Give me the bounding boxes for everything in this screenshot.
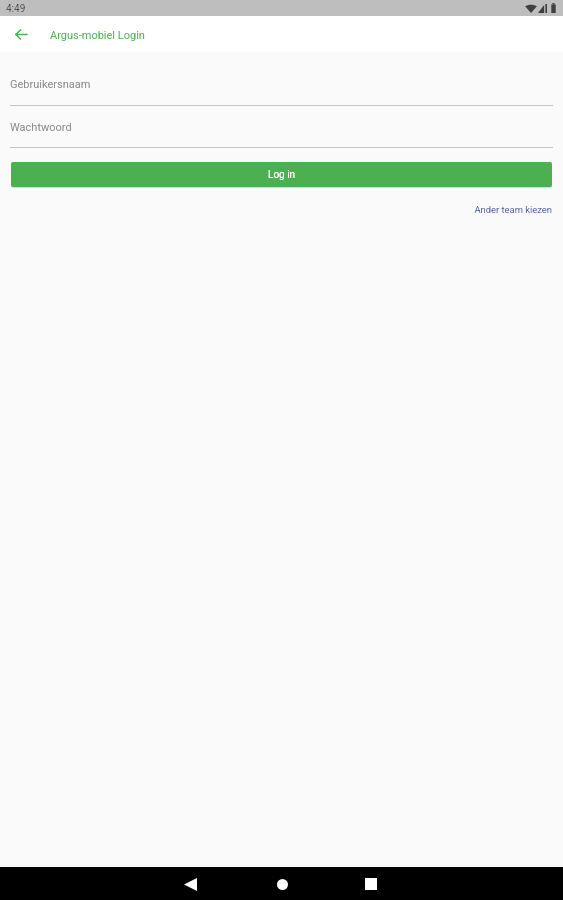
staticText: Log in <box>268 169 296 181</box>
button[interactable]: Recent apps <box>356 869 386 899</box>
button[interactable]: Wachtwoord <box>10 106 553 148</box>
button[interactable]: Ander team kiezen <box>0 204 563 222</box>
staticText: Wachtwoord <box>10 121 72 134</box>
staticText: Ander team kiezen <box>474 204 552 215</box>
button[interactable]: Navigate up <box>0 16 41 52</box>
button[interactable]: Back <box>175 869 205 899</box>
button[interactable]: Log in <box>11 162 552 187</box>
staticText: Gebruikersnaam <box>10 78 91 91</box>
button[interactable]: Gebruikersnaam <box>10 52 553 106</box>
button[interactable]: Home <box>267 869 297 899</box>
staticText: 4:49 <box>6 3 26 15</box>
staticText: Argus-mobiel Login <box>50 29 145 42</box>
